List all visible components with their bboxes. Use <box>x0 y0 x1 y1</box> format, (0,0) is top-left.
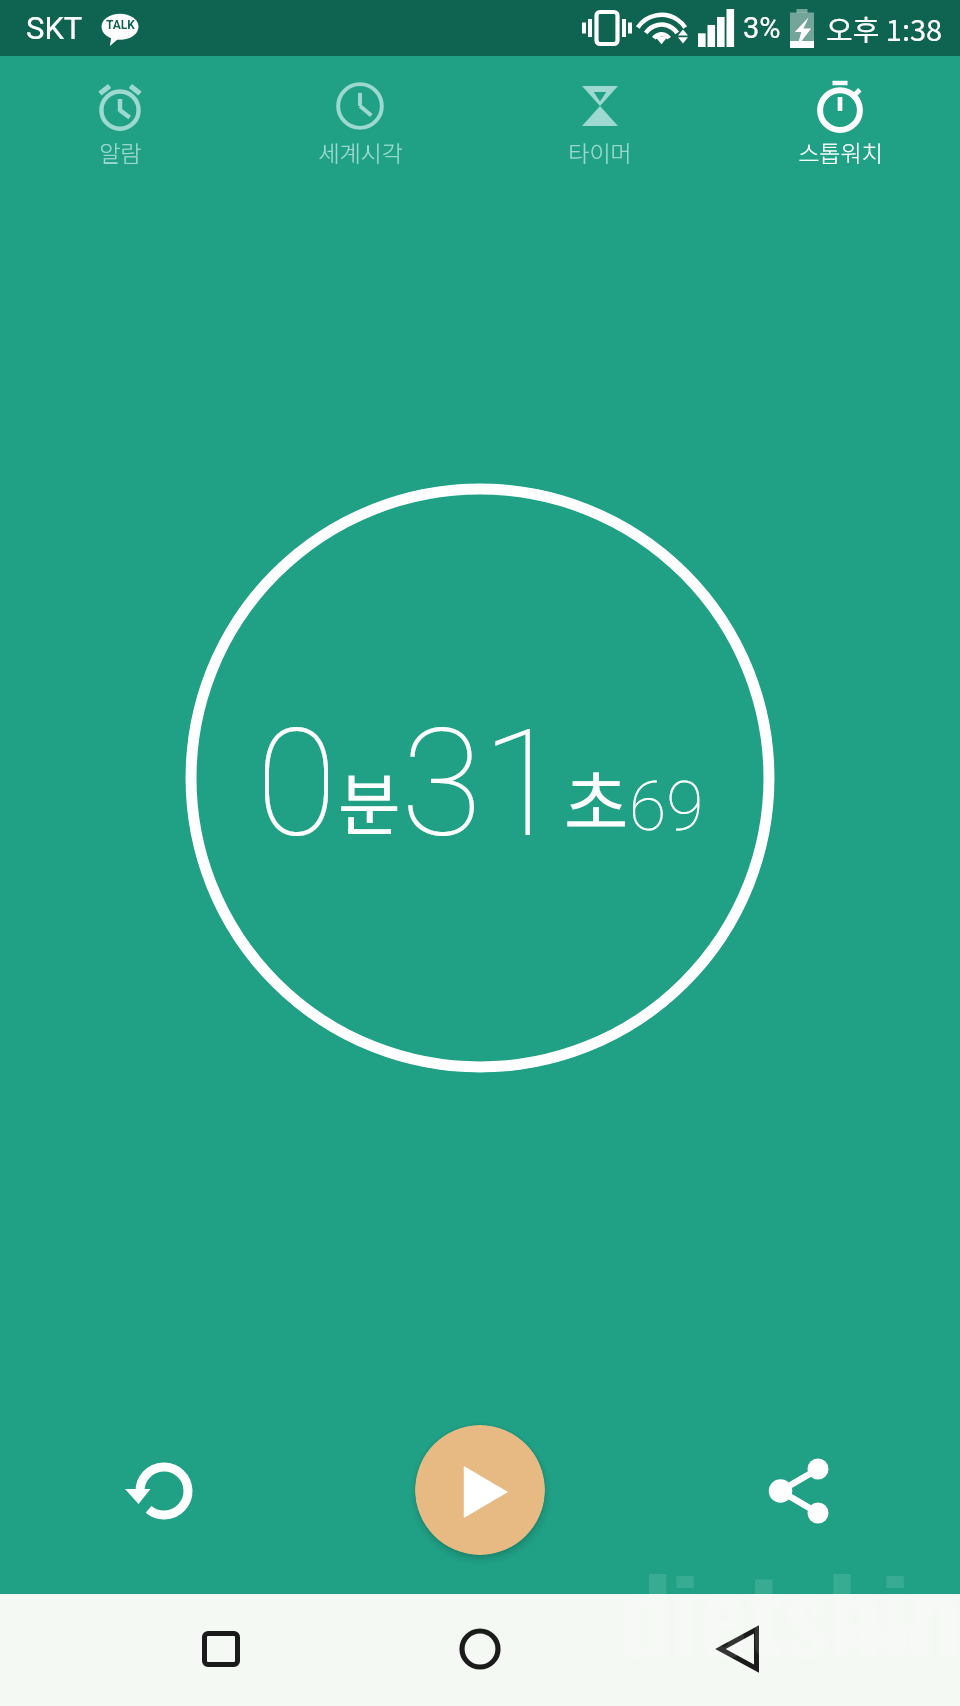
staticText: SKT <box>26 10 83 46</box>
button[interactable]: Recents <box>176 1604 266 1694</box>
button[interactable]: Back <box>693 1604 783 1694</box>
staticText: 세계시각 <box>318 135 403 168</box>
button[interactable]: Home <box>435 1604 525 1694</box>
staticText: 알람 <box>99 135 142 168</box>
staticText: 0 <box>256 698 338 871</box>
button[interactable]: 알람 <box>0 56 240 186</box>
staticText: 스톱워치 <box>798 135 883 168</box>
staticText: 분 <box>338 751 401 849</box>
button[interactable]: Lap <box>185 483 775 1073</box>
staticText: 69 <box>629 767 704 847</box>
button[interactable]: Start <box>415 1425 545 1555</box>
staticText: dietshin <box>619 1534 960 1688</box>
staticText: 초 <box>564 748 629 849</box>
staticText: 오후 1:38 <box>826 7 943 49</box>
staticText: TALK <box>106 18 135 32</box>
button[interactable]: Reset <box>114 1441 214 1541</box>
staticText: 31 <box>401 698 564 871</box>
button[interactable]: 세계시각 <box>240 56 480 186</box>
button[interactable]: 타이머 <box>480 56 720 186</box>
button[interactable]: Share <box>750 1441 850 1541</box>
staticText: 타이머 <box>568 135 632 168</box>
button[interactable]: 스톱워치 <box>720 56 960 186</box>
staticText: 3% <box>743 11 781 45</box>
